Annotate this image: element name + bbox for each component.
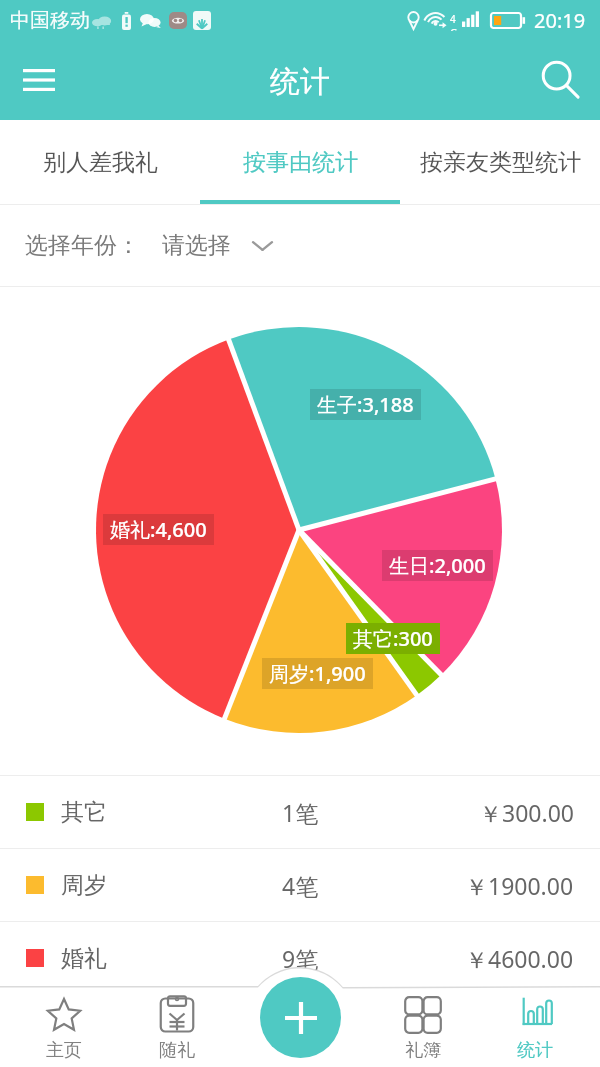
button[interactable]: 随礼 bbox=[125, 952, 229, 1067]
staticText: 4G bbox=[450, 12, 462, 31]
button[interactable]: 按亲友类型统计 bbox=[400, 120, 600, 205]
staticText: 其它:300 bbox=[353, 625, 433, 652]
staticText: 20:19 bbox=[534, 7, 586, 34]
staticText: 主页 bbox=[46, 1039, 82, 1062]
staticText: 选择年份： bbox=[25, 231, 140, 260]
staticText: 9笔 bbox=[282, 943, 319, 974]
staticText: 统计 bbox=[270, 63, 330, 101]
button[interactable]: 选择年份： bbox=[0, 205, 600, 286]
staticText: 4笔 bbox=[282, 870, 319, 901]
button[interactable]: 主页 bbox=[12, 952, 116, 1067]
staticText: ￥300.00 bbox=[479, 797, 574, 828]
button[interactable]: 其它 bbox=[0, 776, 600, 848]
staticText: 生子:3,188 bbox=[317, 391, 414, 418]
staticText: 生日:2,000 bbox=[389, 552, 486, 579]
staticText: 1笔 bbox=[282, 797, 319, 828]
button[interactable]: 周岁 bbox=[0, 849, 600, 921]
staticText: 请选择 bbox=[162, 231, 231, 260]
button[interactable]: 统计 bbox=[483, 952, 587, 1067]
staticText: 按亲友类型统计 bbox=[420, 148, 581, 177]
staticText: 婚礼 bbox=[61, 944, 107, 973]
staticText: 中国移动 bbox=[10, 8, 90, 33]
staticText: ￥4600.00 bbox=[465, 943, 574, 974]
staticText: 按事由统计 bbox=[243, 148, 358, 177]
button[interactable]: 按事由统计 bbox=[200, 120, 400, 205]
button[interactable]: 别人差我礼 bbox=[0, 120, 200, 205]
staticText: 别人差我礼 bbox=[43, 148, 158, 177]
button[interactable]: Menu bbox=[12, 53, 66, 107]
button[interactable]: 礼簿 bbox=[371, 952, 475, 1067]
staticText: 周岁 bbox=[61, 871, 107, 900]
button[interactable]: Add bbox=[260, 977, 341, 1058]
button[interactable]: 婚礼 bbox=[0, 922, 600, 994]
staticText: ￥1900.00 bbox=[465, 870, 574, 901]
staticText: 随礼 bbox=[159, 1039, 195, 1062]
staticText: 周岁:1,900 bbox=[269, 660, 366, 687]
staticText: 统计 bbox=[517, 1039, 553, 1062]
button[interactable]: Search bbox=[535, 54, 587, 106]
staticText: 礼簿 bbox=[405, 1039, 441, 1062]
staticText: 婚礼:4,600 bbox=[110, 516, 207, 543]
staticText: 其它 bbox=[61, 798, 107, 827]
